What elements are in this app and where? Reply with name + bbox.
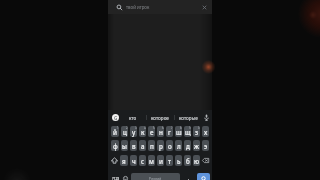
staticText: н bbox=[159, 128, 163, 136]
button[interactable]: е bbox=[148, 126, 155, 137]
staticText: которые bbox=[179, 115, 198, 121]
button[interactable]: Backspace bbox=[201, 155, 210, 166]
staticText: м bbox=[149, 157, 154, 165]
button[interactable]: ф bbox=[111, 140, 119, 151]
button[interactable]: р bbox=[157, 140, 164, 151]
staticText: л bbox=[177, 142, 181, 150]
button[interactable]: м bbox=[148, 155, 155, 166]
button[interactable]: у bbox=[130, 126, 137, 137]
staticText: ж bbox=[194, 142, 199, 150]
staticText: п bbox=[150, 142, 154, 150]
staticText: щ bbox=[185, 128, 191, 136]
staticText: 6 bbox=[162, 126, 164, 130]
button[interactable]: д bbox=[184, 140, 191, 151]
staticText: ?123 bbox=[112, 176, 120, 180]
button[interactable]: ?123 bbox=[110, 173, 121, 180]
button[interactable]: б bbox=[184, 155, 191, 166]
staticText: 1 bbox=[117, 126, 119, 130]
staticText: ю bbox=[194, 157, 200, 165]
staticText: к bbox=[141, 128, 145, 136]
button[interactable]: н bbox=[157, 126, 164, 137]
staticText: х bbox=[204, 128, 208, 136]
staticText: G bbox=[114, 115, 118, 121]
staticText: 0 bbox=[198, 126, 200, 130]
button[interactable]: Русский bbox=[131, 173, 180, 180]
button[interactable]: и bbox=[157, 155, 164, 166]
staticText: 8 bbox=[180, 126, 182, 130]
staticText: з bbox=[195, 128, 199, 136]
button[interactable]: х bbox=[202, 126, 209, 137]
staticText: 4 bbox=[144, 126, 146, 130]
staticText: 3 bbox=[135, 126, 137, 130]
staticText: твой игрок bbox=[126, 4, 150, 10]
staticText: б bbox=[186, 157, 190, 165]
staticText: а bbox=[141, 142, 145, 150]
button[interactable]: Gboard settings bbox=[112, 114, 119, 121]
button[interactable]: ц bbox=[121, 126, 128, 137]
staticText: кто bbox=[129, 115, 137, 121]
button[interactable]: ю bbox=[193, 155, 200, 166]
button[interactable]: с bbox=[139, 155, 146, 166]
staticText: 5 bbox=[153, 126, 155, 130]
button[interactable]: г bbox=[166, 126, 173, 137]
button[interactable]: Period bbox=[181, 173, 197, 180]
button[interactable]: т bbox=[166, 155, 173, 166]
staticText: й bbox=[113, 128, 117, 136]
staticText: о bbox=[168, 142, 172, 150]
staticText: е bbox=[150, 128, 154, 136]
button[interactable]: ы bbox=[121, 140, 128, 151]
button[interactable]: л bbox=[175, 140, 182, 151]
staticText: которое bbox=[151, 115, 169, 121]
button[interactable]: которые bbox=[174, 110, 202, 125]
staticText: Русский bbox=[149, 177, 162, 180]
staticText: ф bbox=[113, 142, 118, 150]
button[interactable]: о bbox=[166, 140, 173, 151]
button[interactable]: в bbox=[130, 140, 137, 151]
staticText: я bbox=[122, 157, 126, 165]
staticText: . bbox=[188, 175, 190, 180]
button[interactable]: й bbox=[111, 126, 119, 137]
staticText: т bbox=[168, 157, 171, 165]
button[interactable]: а bbox=[139, 140, 146, 151]
button[interactable]: э bbox=[202, 140, 209, 151]
button[interactable]: п bbox=[148, 140, 155, 151]
staticText: ц bbox=[123, 128, 127, 136]
staticText: э bbox=[204, 142, 208, 150]
button[interactable]: которое bbox=[146, 110, 174, 125]
staticText: с bbox=[141, 157, 145, 165]
button[interactable]: Emoji bbox=[121, 173, 130, 180]
button[interactable]: к bbox=[139, 126, 146, 137]
button[interactable]: щ bbox=[184, 126, 191, 137]
button[interactable]: Shift bbox=[110, 155, 119, 166]
button[interactable]: Search bbox=[108, 0, 212, 14]
staticText: ь bbox=[177, 157, 181, 165]
staticText: 2 bbox=[126, 126, 128, 130]
button[interactable]: ч bbox=[130, 155, 137, 166]
staticText: ш bbox=[176, 128, 182, 136]
button[interactable]: ш bbox=[175, 126, 182, 137]
button[interactable]: Voice input bbox=[202, 113, 211, 122]
staticText: ы bbox=[122, 142, 127, 150]
staticText: ч bbox=[132, 157, 136, 165]
other: Search bbox=[116, 4, 123, 11]
staticText: 7 bbox=[171, 126, 173, 130]
staticText: и bbox=[159, 157, 163, 165]
button[interactable]: Clear search bbox=[200, 3, 209, 12]
staticText: у bbox=[132, 128, 136, 136]
staticText: р bbox=[159, 142, 163, 150]
staticText: г bbox=[168, 128, 171, 136]
staticText: 9 bbox=[189, 126, 191, 130]
button[interactable]: ь bbox=[175, 155, 182, 166]
button[interactable]: кто bbox=[119, 110, 146, 125]
button[interactable]: я bbox=[120, 155, 128, 166]
staticText: в bbox=[132, 142, 136, 150]
button[interactable]: з bbox=[193, 126, 200, 137]
button[interactable]: ж bbox=[193, 140, 200, 151]
staticText: д bbox=[186, 142, 190, 150]
button[interactable]: Search bbox=[197, 173, 210, 180]
